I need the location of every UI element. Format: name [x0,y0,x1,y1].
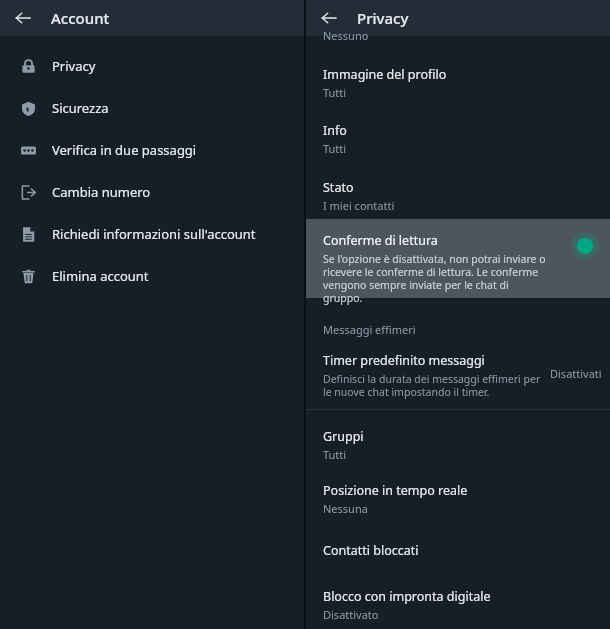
button[interactable]: Richiedi informazioni sull'account [0,213,304,255]
button[interactable]: Elimina account [0,255,304,297]
staticText: Elimina account [52,267,149,285]
staticText: Disattivati [550,366,602,381]
staticText: Gruppi [323,428,364,445]
staticText: Tutti [323,447,347,462]
button[interactable]: Back [8,3,38,33]
button[interactable]: Stato [306,175,610,217]
staticText: Nessuno [323,28,369,43]
staticText: Verifica in due passaggi [52,141,197,159]
button[interactable]: Posizione in tempo reale [306,478,610,520]
staticText: Tutti [323,141,347,156]
staticText: Privacy [52,57,96,75]
button[interactable]: Conferme di lettura toggle [570,231,600,261]
staticText: I miei contatti [323,198,395,213]
staticText: Messaggi effimeri [323,322,416,337]
staticText: Timer predefinito messaggi [323,352,485,369]
button[interactable]: Immagine del profilo [306,62,610,104]
staticText: Nessuna [323,501,368,516]
staticText: Disattivato [323,607,379,622]
staticText: Blocco con impronta digitale [323,588,491,605]
staticText: Cambia numero [52,183,151,201]
button[interactable]: Verifica in due passaggi [0,129,304,171]
staticText: Privacy [357,8,409,28]
staticText: Conferme di lettura [323,232,438,249]
staticText: Se l'opzione è disattivata, non potrai i… [323,252,548,305]
staticText: Sicurezza [52,99,109,117]
button[interactable]: Gruppi [306,424,610,466]
button[interactable]: Sicurezza [0,87,304,129]
staticText: Definisci la durata dei messaggi effimer… [323,372,545,399]
button[interactable]: Contatti bloccati [306,532,610,568]
staticText: Tutti [323,85,347,100]
button[interactable]: Privacy [0,45,304,87]
staticText: Immagine del profilo [323,66,447,83]
button[interactable]: Timer predefinito messaggi [306,348,610,408]
staticText: Stato [323,179,354,196]
button[interactable]: Back [314,3,344,33]
button[interactable]: Info [306,118,610,160]
staticText: Posizione in tempo reale [323,482,468,499]
staticText: Contatti bloccati [323,542,419,559]
staticText: Account [51,8,110,28]
staticText: Richiedi informazioni sull'account [52,225,256,243]
button[interactable]: Cambia numero [0,171,304,213]
staticText: Info [323,122,347,139]
button[interactable]: Conferme di lettura [306,219,610,298]
button[interactable]: Blocco con impronta digitale [306,584,610,626]
